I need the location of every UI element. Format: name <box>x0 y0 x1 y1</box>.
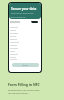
button[interactable] <box>10 26 41 29</box>
button[interactable] <box>10 44 41 47</box>
staticText: Form Filling in NFC <box>8 82 40 87</box>
staticText: Submit <box>22 64 29 67</box>
button[interactable] <box>10 35 41 38</box>
button[interactable]: Submit <box>12 63 39 67</box>
button[interactable] <box>10 47 41 50</box>
button[interactable] <box>10 50 41 53</box>
staticText: Save time by filling forms <box>11 12 34 15</box>
button[interactable] <box>10 56 41 59</box>
button[interactable] <box>10 58 41 61</box>
button[interactable] <box>10 38 41 41</box>
button[interactable]: Toggle autofill <box>31 21 38 23</box>
staticText: with a single tap <box>11 16 26 19</box>
staticText: Secure your data <box>11 7 37 11</box>
staticText: Seamless way to fill the form with your … <box>8 89 44 95</box>
button[interactable] <box>10 53 41 56</box>
button[interactable] <box>10 41 41 44</box>
button[interactable] <box>10 29 41 32</box>
button[interactable] <box>10 32 41 35</box>
